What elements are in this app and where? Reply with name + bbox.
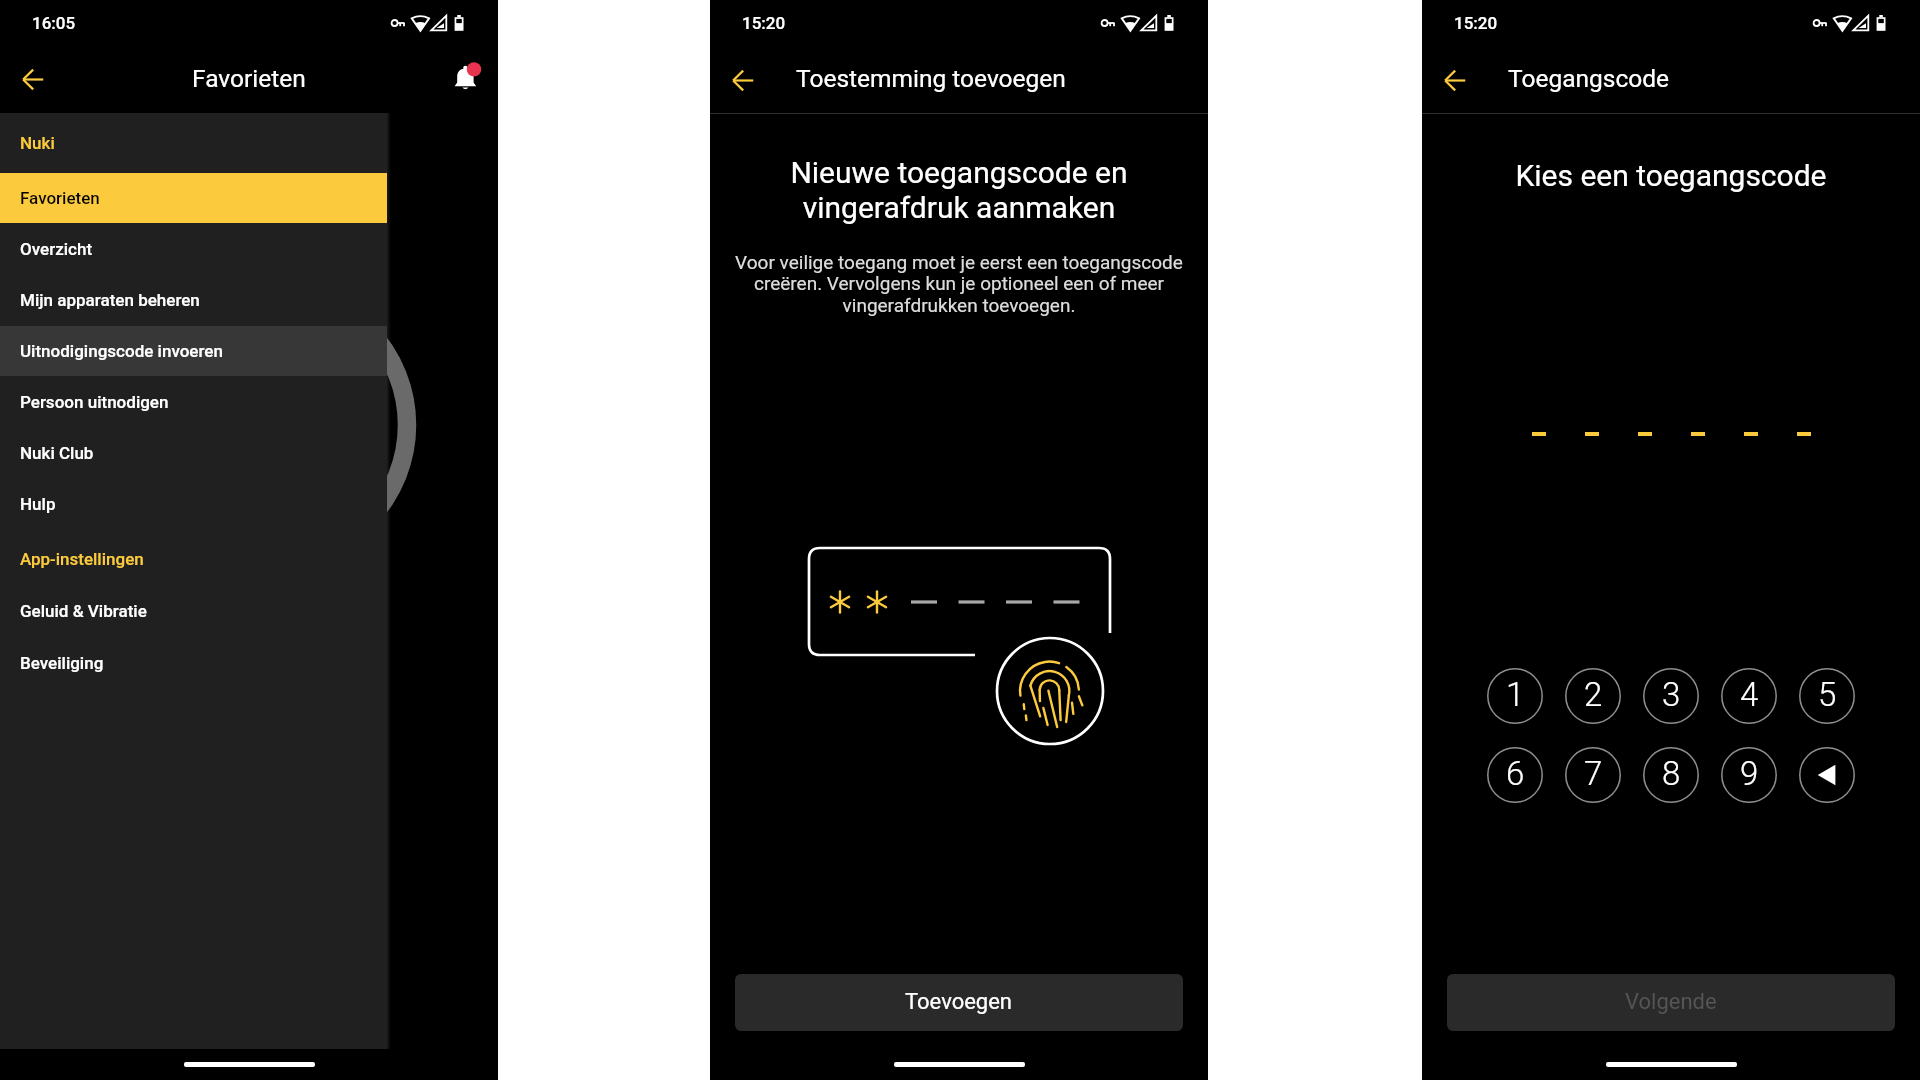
button[interactable]: Wissen	[1788, 735, 1866, 814]
button[interactable]: Persoon uitnodigen	[0, 377, 387, 427]
staticText: 15:20	[1454, 13, 1498, 33]
button[interactable]: Geluid & Vibratie	[0, 586, 387, 636]
staticText: 8	[1662, 754, 1681, 793]
staticText: Favorieten	[192, 64, 306, 93]
button[interactable]: Volgende	[1447, 974, 1895, 1031]
staticText: Persoon uitnodigen	[20, 392, 169, 412]
button[interactable]: Overzicht	[0, 224, 387, 274]
staticText: Geluid & Vibratie	[20, 601, 147, 621]
button[interactable]: Nuki Club	[0, 428, 387, 478]
button[interactable]: 6	[1476, 735, 1554, 814]
staticText: Beveiliging	[20, 653, 104, 673]
button[interactable]: 7	[1554, 735, 1632, 814]
button[interactable]: Toevoegen	[735, 974, 1183, 1031]
staticText: Uitnodigingscode invoeren	[20, 341, 223, 361]
button[interactable]: Meldingen	[444, 55, 492, 103]
staticText: 3	[1662, 675, 1681, 714]
button[interactable]: Uitnodigingscode invoeren	[0, 326, 387, 376]
staticText: Kies een toegangscode	[1422, 158, 1920, 193]
staticText: 15:20	[742, 13, 786, 33]
staticText: Nuki	[20, 133, 55, 153]
button[interactable]: 2	[1554, 656, 1632, 735]
staticText: 5	[1818, 675, 1837, 714]
staticText: 6	[1506, 754, 1525, 793]
staticText: Voor veilige toegang moet je eerst een t…	[722, 251, 1196, 317]
staticText: Hulp	[20, 494, 56, 514]
staticText: Overzicht	[20, 239, 93, 259]
button[interactable]: 4	[1710, 656, 1788, 735]
button[interactable]: Favorieten	[0, 173, 387, 223]
button[interactable]: 3	[1632, 656, 1710, 735]
button[interactable]: 9	[1710, 735, 1788, 814]
staticText: 4	[1740, 675, 1759, 714]
staticText: Nieuwe toegangscode en vingerafdruk aanm…	[710, 155, 1208, 225]
staticText: Toevoegen	[905, 989, 1013, 1015]
staticText: Mijn apparaten beheren	[20, 290, 200, 310]
staticText: Favorieten	[20, 188, 100, 208]
button[interactable]: 5	[1788, 656, 1866, 735]
staticText: 16:05	[32, 13, 76, 33]
button[interactable]: Nuki	[0, 118, 387, 168]
staticText: 2	[1584, 675, 1603, 714]
button[interactable]: 1	[1476, 656, 1554, 735]
staticText: 1	[1506, 675, 1525, 714]
staticText: 9	[1740, 754, 1759, 793]
staticText: Toestemming toevoegen	[796, 64, 1066, 93]
button[interactable]: Terug	[719, 56, 767, 104]
button[interactable]: App-instellingen	[0, 534, 387, 584]
staticText: App-instellingen	[20, 549, 144, 569]
staticText: Nuki Club	[20, 443, 94, 463]
button[interactable]: Terug	[9, 55, 57, 103]
staticText: 7	[1584, 754, 1603, 793]
button[interactable]: Beveiliging	[0, 638, 387, 688]
button[interactable]: Mijn apparaten beheren	[0, 275, 387, 325]
button[interactable]: Terug	[1431, 56, 1479, 104]
staticText: Volgende	[1625, 989, 1717, 1015]
button[interactable]: 8	[1632, 735, 1710, 814]
staticText: Toegangscode	[1508, 64, 1670, 93]
button[interactable]: Hulp	[0, 479, 387, 529]
